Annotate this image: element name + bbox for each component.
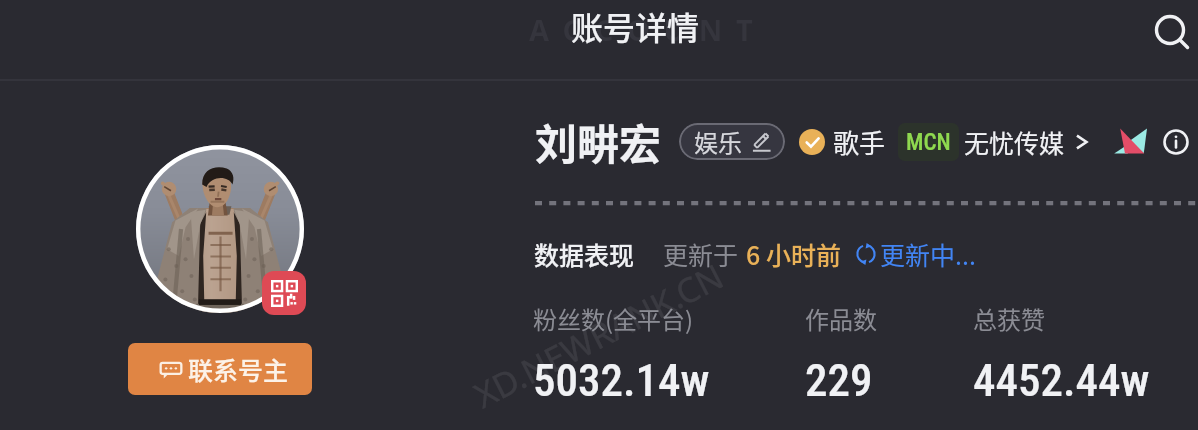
staticText: 5032.14w bbox=[533, 354, 710, 407]
staticText: 更新于 bbox=[663, 236, 739, 272]
staticText: 账号详情 bbox=[571, 3, 700, 49]
staticText: 作品数 bbox=[805, 301, 877, 336]
staticText: XD.NEWRANK.CN bbox=[466, 253, 731, 418]
staticText: 粉丝数(全平台) bbox=[533, 301, 694, 336]
staticText: 娱乐 bbox=[694, 124, 742, 159]
staticText: 4452.44w bbox=[973, 354, 1150, 407]
button[interactable]: Info bbox=[1163, 129, 1189, 155]
staticText: 歌手 bbox=[833, 123, 886, 161]
button[interactable]: Search bbox=[1143, 1, 1191, 49]
staticText: 无忧传媒 bbox=[964, 124, 1065, 160]
staticText: 刘畊宏 bbox=[535, 111, 662, 172]
staticText: 229 bbox=[805, 354, 873, 407]
staticText: A C C O U N T bbox=[529, 10, 756, 49]
staticText: 联系号主 bbox=[188, 351, 289, 387]
button[interactable]: QR code bbox=[262, 271, 306, 315]
button[interactable]: Profile photo bbox=[136, 145, 304, 313]
staticText: 数据表现 bbox=[534, 236, 635, 272]
button[interactable]: 联系号主 bbox=[128, 343, 312, 395]
button[interactable]: 娱乐 bbox=[679, 123, 785, 160]
staticText: 总获赞 bbox=[973, 301, 1045, 336]
button[interactable]: 无忧传媒 bbox=[964, 124, 1089, 160]
staticText: MCN bbox=[906, 129, 951, 156]
staticText: 6 小时前 bbox=[746, 236, 841, 272]
staticText: 更新中... bbox=[880, 236, 976, 272]
button[interactable]: 更新中... bbox=[854, 236, 976, 272]
